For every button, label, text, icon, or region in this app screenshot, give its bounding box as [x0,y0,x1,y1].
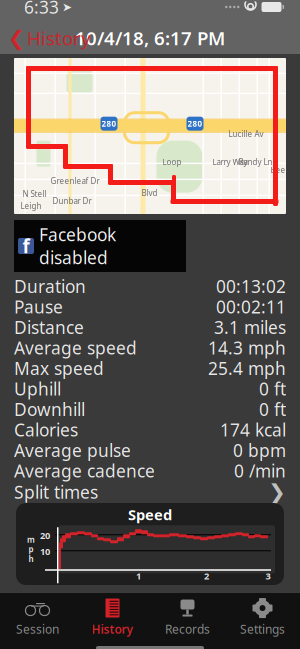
staticText: 00:13:02 [216,275,286,298]
staticText: Settings [240,621,285,637]
staticText: 10 [40,545,50,558]
staticText: Average cadence [14,459,155,482]
staticText: Average speed [14,336,137,359]
staticText: 0 /min [234,459,286,482]
staticText: 0 ft [259,398,286,421]
staticText: 14.3 mph [208,336,286,359]
staticText: 2 [204,570,209,582]
staticText: Split times [14,480,98,503]
staticText: Greenleaf Dr [50,176,99,186]
staticText: 3.1 miles [214,316,286,339]
staticText: 00:02:11 [216,295,286,318]
staticText: Max speed [14,357,104,380]
staticText: Larry Way [212,157,247,167]
staticText: ➤ [62,0,72,14]
staticText: 25.4 mph [208,357,286,380]
staticText: Downhill [14,398,85,421]
staticText: Duration [14,275,86,298]
staticText: Pause [14,295,63,318]
staticText: m [27,534,35,545]
staticText: 20 [40,529,50,542]
staticText: 280 [101,118,116,129]
button[interactable]: History [75,598,150,636]
button[interactable]: Split times [0,481,300,503]
staticText: p [28,544,33,554]
staticText: Bee [270,165,285,175]
button[interactable]: Session [0,598,75,636]
button[interactable]: f [14,220,186,272]
staticText: h [28,554,33,564]
staticText: Blvd [141,188,157,198]
staticText: 1 [136,570,141,582]
staticText: 6:33 [24,0,59,18]
staticText: ❯ [268,480,286,504]
staticText: f [22,234,29,258]
staticText: Records [165,621,210,637]
button[interactable]: Records [150,598,225,636]
staticText: Randy Ln [238,157,272,167]
button[interactable]: ❮ [0,22,91,54]
staticText: Distance [14,316,84,339]
staticText: Uphill [14,377,61,400]
staticText: Lucille Av [228,129,263,139]
staticText: 10/4/18, 6:17 PM [75,26,225,50]
staticText: History [91,621,133,637]
staticText: Average pulse [14,439,131,462]
staticText: 280 [187,118,202,129]
staticText: Facebook disabled [39,223,116,269]
staticText: 174 kcal [220,418,286,441]
staticText: Leigh [20,201,41,211]
button[interactable]: Settings [225,598,300,636]
staticText: History [27,26,91,50]
staticText: Speed [128,505,172,524]
staticText: Loop [162,157,181,167]
staticText: 3 [265,570,270,582]
staticText: Calories [14,418,78,441]
staticText: Dunbar Dr [52,196,91,206]
staticText: Session [16,621,59,637]
staticText: 0 bpm [233,439,286,462]
staticText: N Stell [22,189,46,199]
staticText: 0 ft [259,377,286,400]
staticText: ❮ [8,27,25,49]
